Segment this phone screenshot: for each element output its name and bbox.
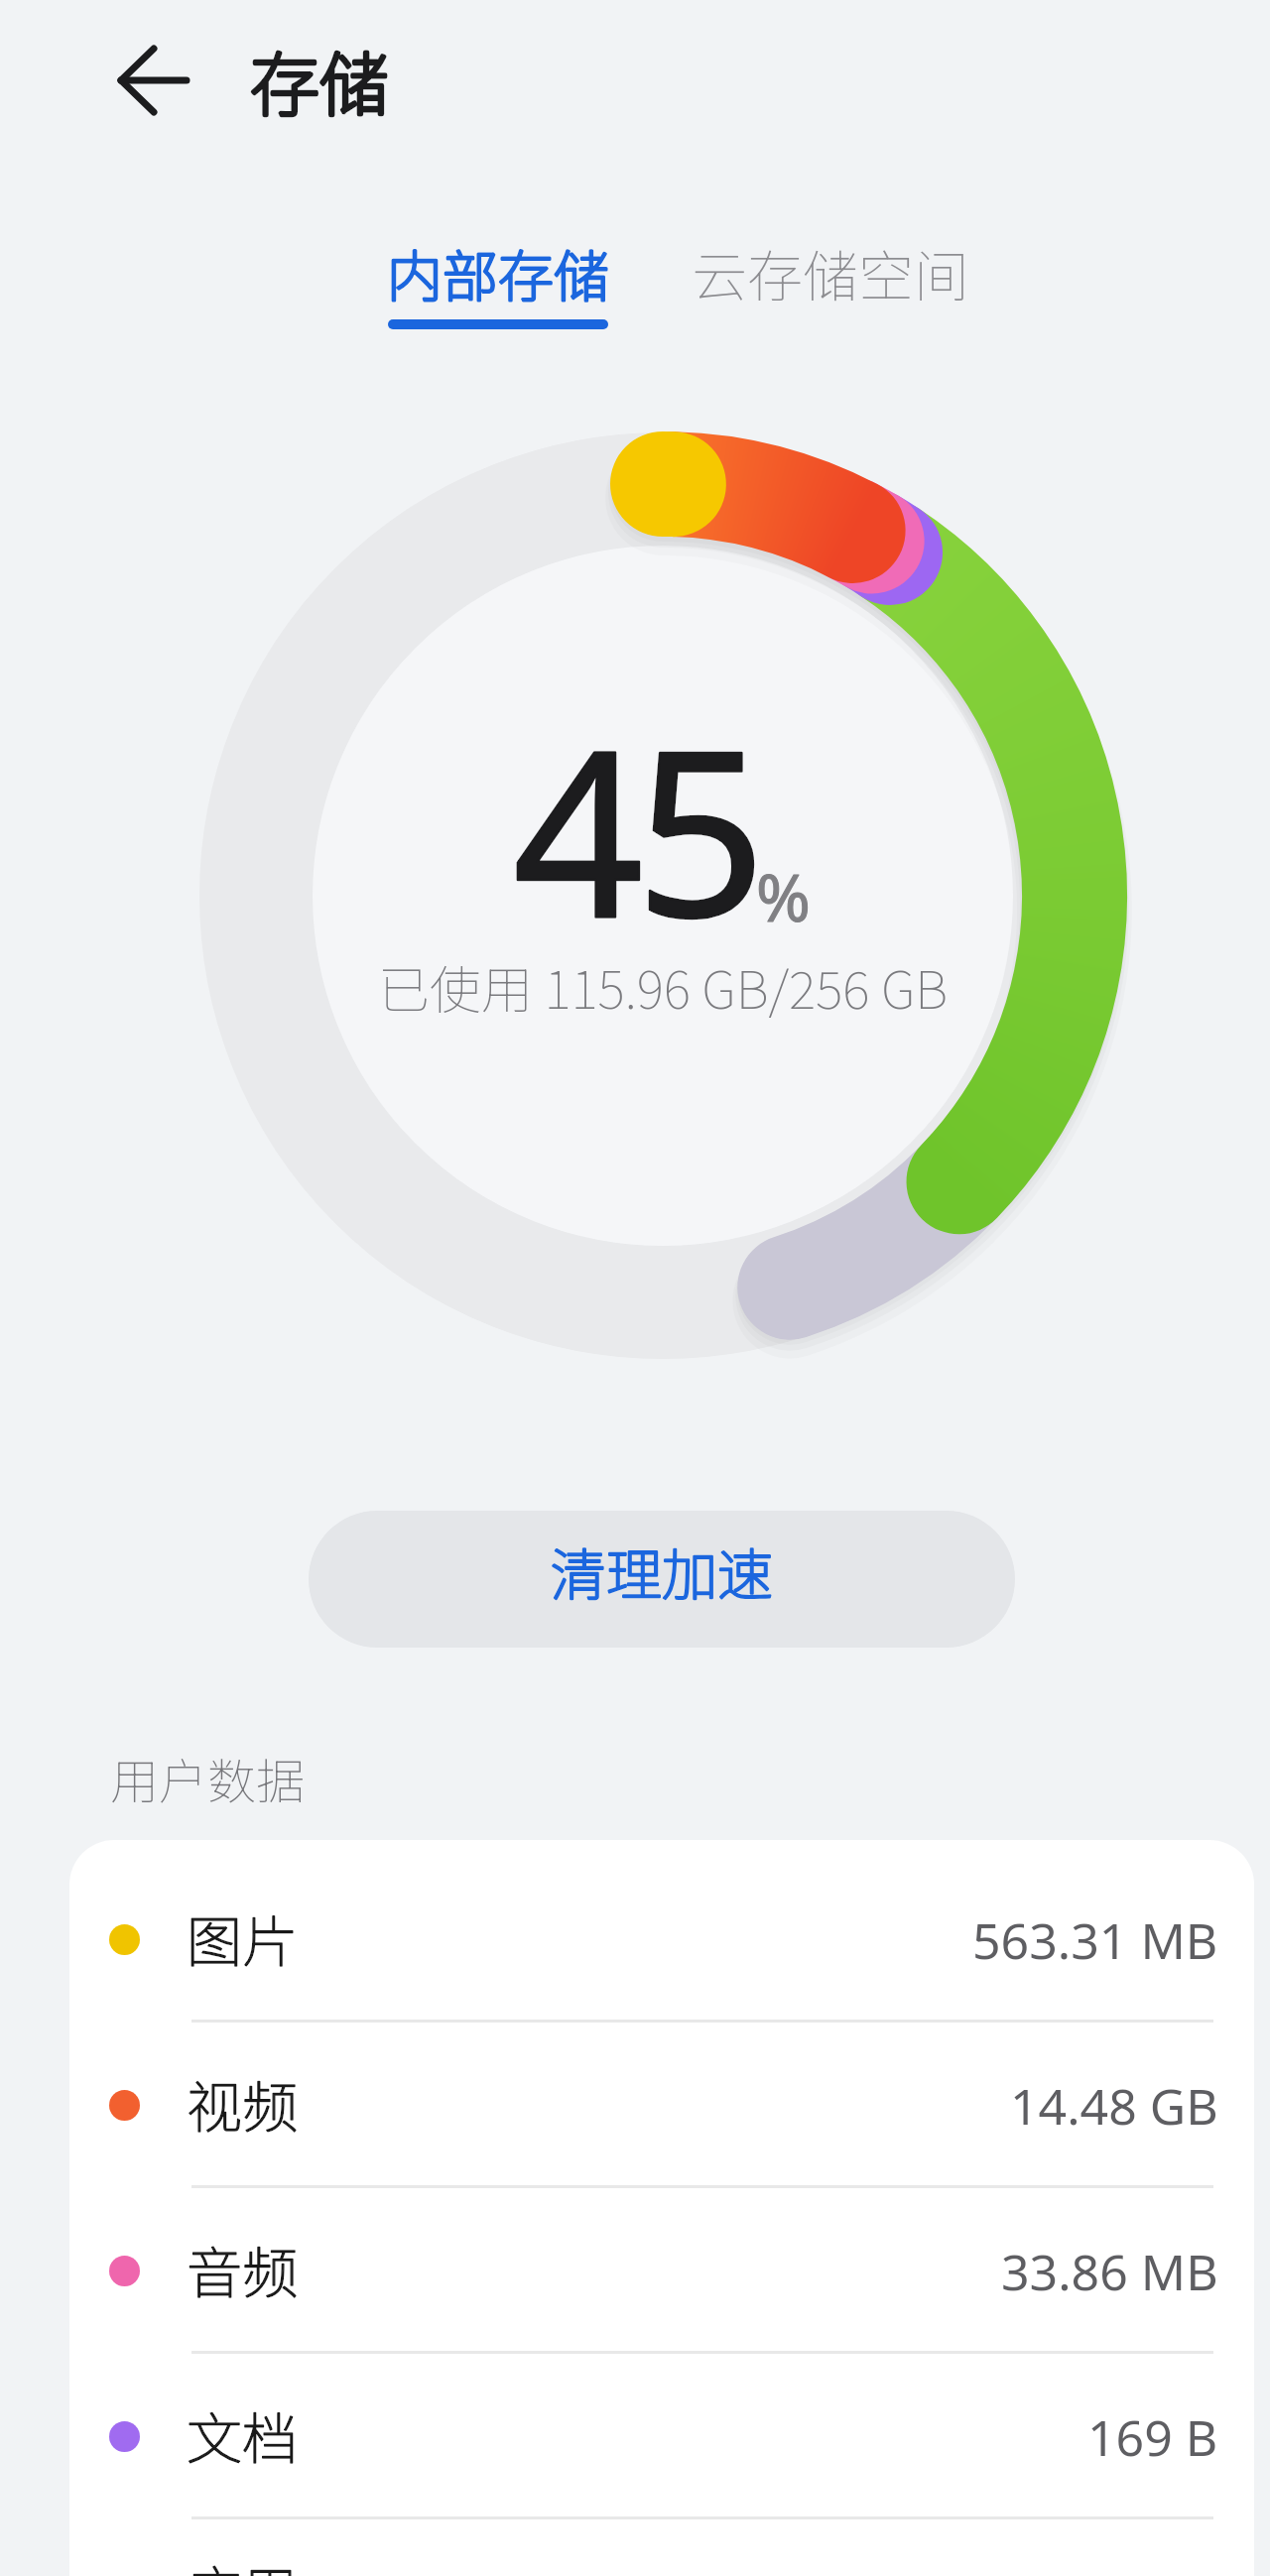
staticText: % (756, 851, 811, 940)
staticText: 图片 (187, 1898, 298, 1978)
button[interactable]: 音频 (69, 2188, 1254, 2354)
button[interactable]: 视频 (69, 2023, 1254, 2188)
staticText: 清理加速 (551, 1531, 773, 1611)
staticText: 文档 (187, 2394, 298, 2475)
button[interactable]: 清理加速 (309, 1511, 1015, 1648)
staticText: 563.31 MB (972, 1906, 1218, 1974)
button[interactable]: 云存储空间 (692, 232, 969, 312)
button[interactable]: 图片 (69, 1857, 1254, 2023)
staticText: 已使用 115.96 GB/256 GB (378, 949, 949, 1024)
button[interactable]: 内部存储 (387, 232, 609, 329)
staticText: 视频 (187, 2063, 298, 2144)
staticText: 音频 (187, 2229, 298, 2309)
button[interactable]: 文档 (69, 2354, 1254, 2519)
staticText: 音频 (187, 2229, 298, 2309)
staticText: 清理加速 (551, 1531, 773, 1611)
staticText: 45 (513, 673, 759, 983)
button[interactable] (109, 46, 198, 115)
staticText: 用户数据 (110, 1743, 306, 1813)
staticText: 45 (513, 673, 759, 983)
staticText: 云存储空间 (692, 232, 969, 312)
staticText: 内部存储 (387, 232, 609, 312)
staticText: 图片 (187, 1898, 298, 1978)
staticText: 应用 (187, 2548, 298, 2576)
button[interactable]: 应用 (69, 2519, 1254, 2576)
staticText: 文档 (187, 2394, 298, 2475)
staticText: 应用 (187, 2548, 298, 2576)
staticText: % (756, 851, 811, 940)
staticText: 视频 (187, 2063, 298, 2144)
staticText: 内部存储 (387, 232, 609, 312)
staticText: 33.86 MB (1001, 2238, 1218, 2305)
staticText: 存储 (250, 30, 389, 130)
staticText: 169 B (1087, 2403, 1218, 2471)
staticText: 14.48 GB (1010, 2072, 1218, 2140)
staticText: 存储 (250, 30, 389, 130)
